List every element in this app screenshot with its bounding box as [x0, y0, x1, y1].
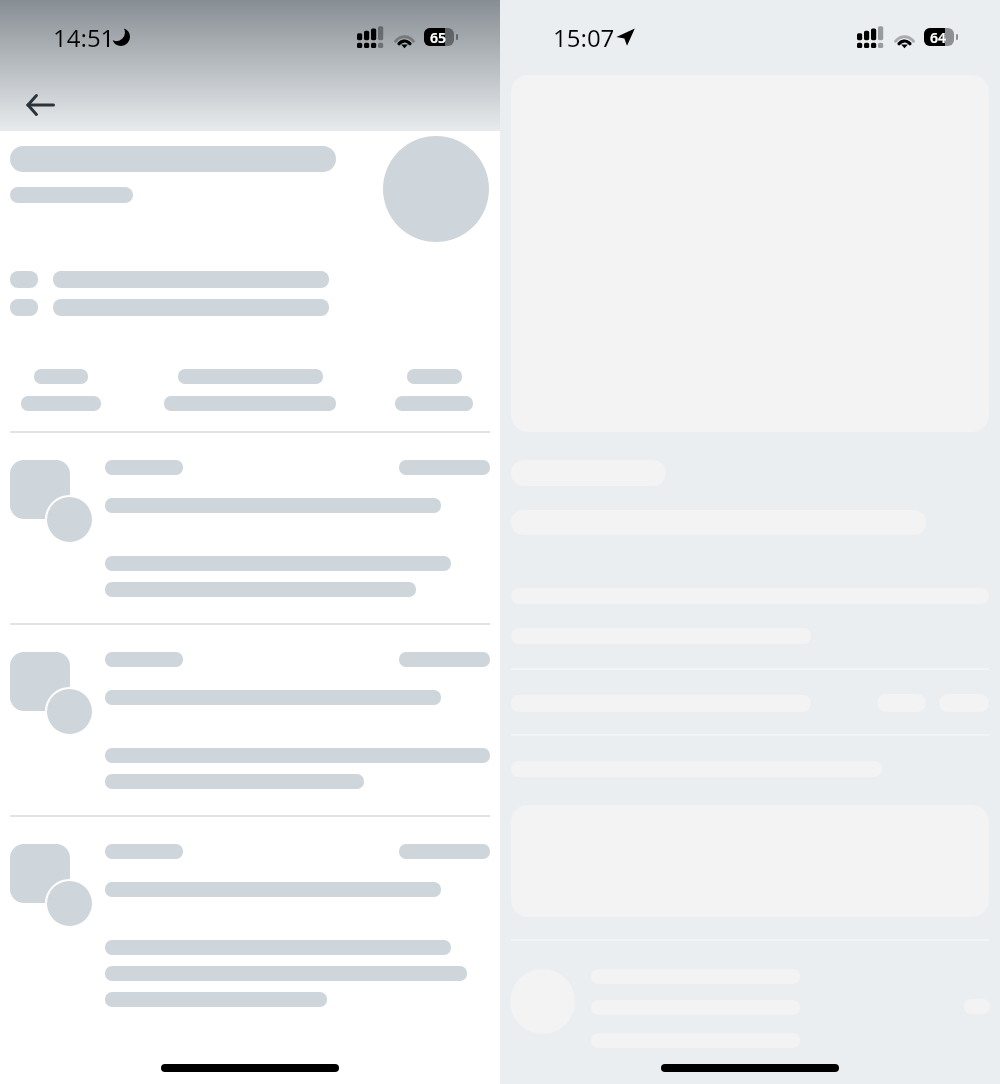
button[interactable]: List item, loading — [0, 635, 500, 827]
staticText: 15:07 — [553, 21, 615, 54]
staticText: 14:51 — [53, 21, 115, 54]
button[interactable]: List item, loading — [0, 827, 500, 1032]
button[interactable]: Back — [12, 84, 68, 126]
button[interactable]: Profile header, loading — [0, 131, 500, 251]
button[interactable]: List item, loading — [0, 443, 500, 635]
staticText: 64 — [930, 28, 947, 46]
staticText: 65 — [430, 28, 447, 46]
